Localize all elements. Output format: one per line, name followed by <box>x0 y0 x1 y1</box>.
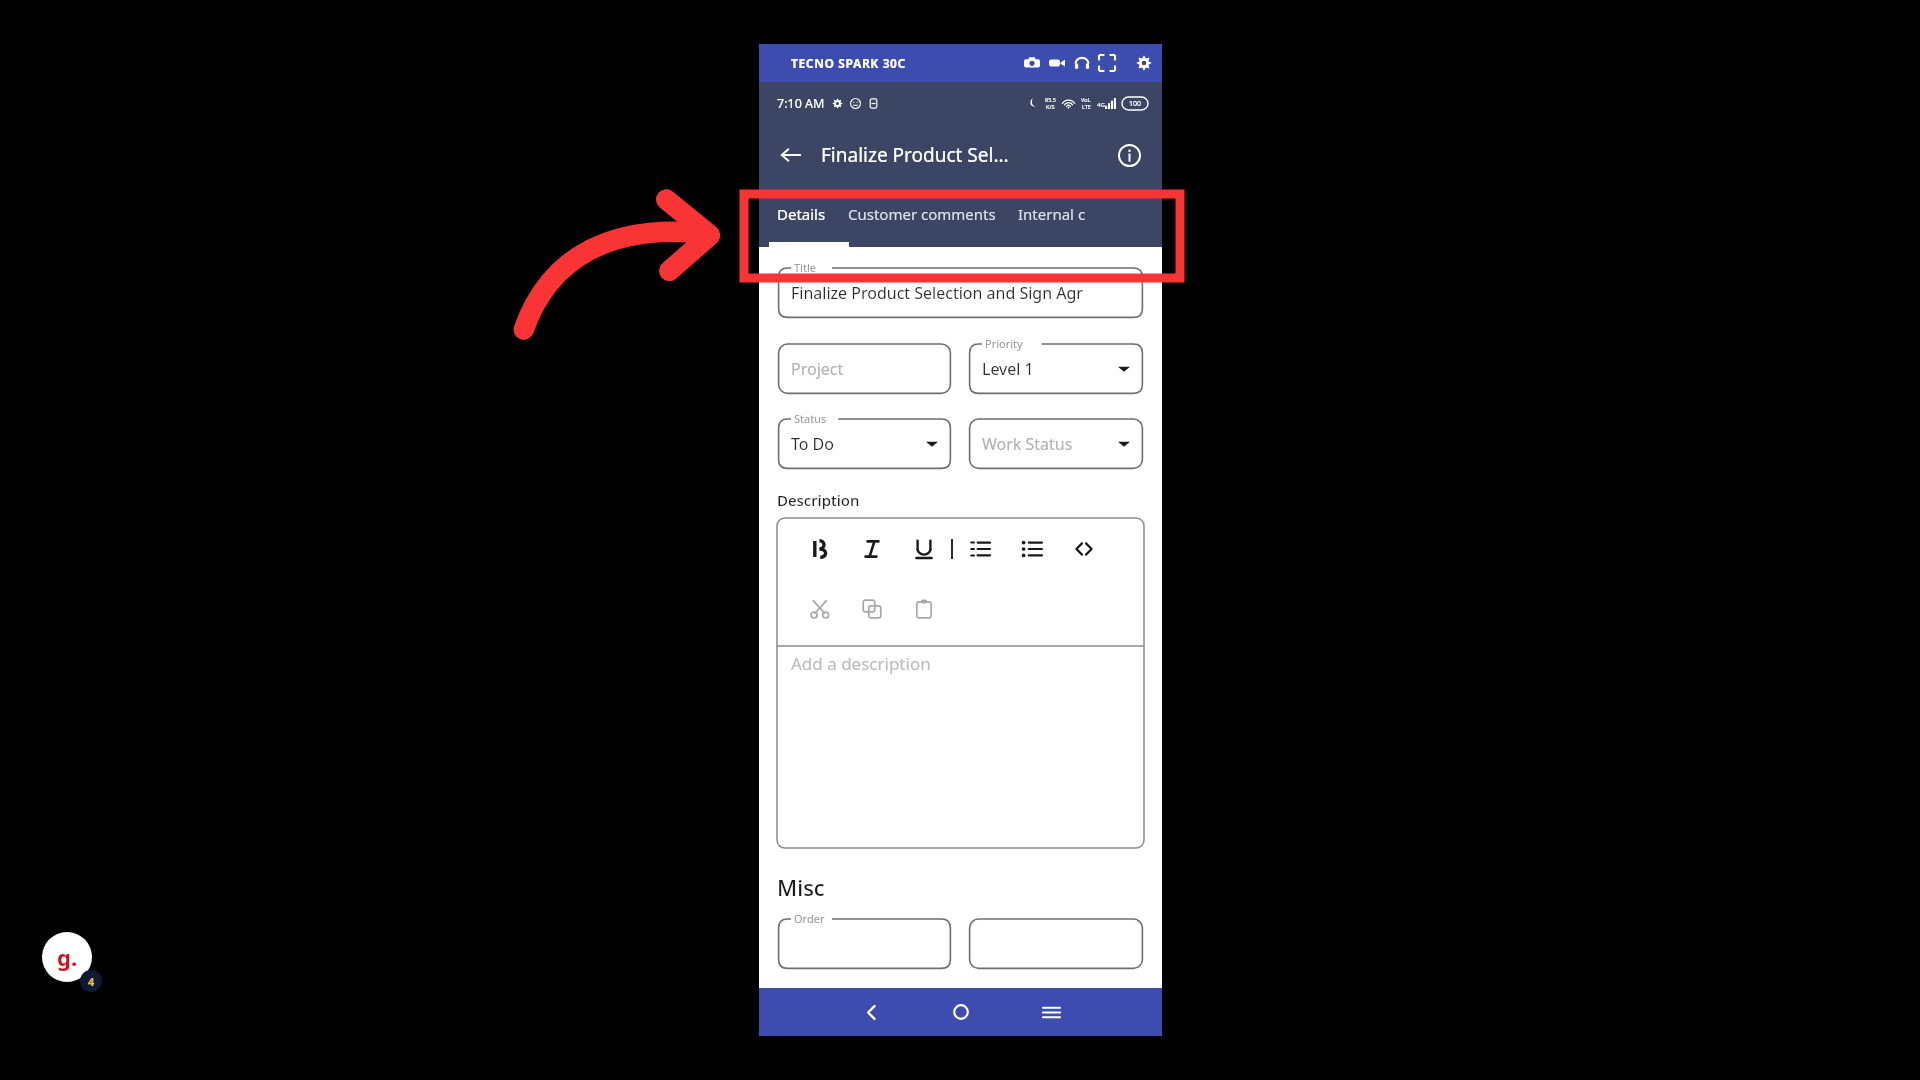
staticText: Order <box>794 911 825 926</box>
button[interactable]: Back <box>844 988 898 1036</box>
staticText: To Do <box>791 433 834 455</box>
button[interactable]: Copy <box>859 596 885 622</box>
button[interactable]: Internal c <box>1018 186 1086 242</box>
staticText: K/S <box>1046 103 1055 110</box>
button[interactable]: Fullscreen <box>1099 55 1115 71</box>
staticText: 100 <box>1129 99 1142 109</box>
button[interactable]: Recent apps <box>1024 988 1078 1036</box>
staticText: 7:10 AM <box>777 95 825 112</box>
button[interactable]: Title <box>777 261 1144 319</box>
button[interactable]: Bulleted list <box>1019 536 1045 562</box>
button[interactable]: Settings <box>1136 55 1152 71</box>
button[interactable]: Bold <box>807 536 833 562</box>
button[interactable] <box>968 912 1144 970</box>
button[interactable]: Order <box>777 912 952 970</box>
button[interactable]: g. <box>42 932 92 982</box>
staticText: Customer comments <box>848 204 996 224</box>
button[interactable]: Work Status <box>968 412 1144 470</box>
staticText: Misc <box>777 872 825 902</box>
staticText: 85.5 <box>1045 96 1056 103</box>
button[interactable]: Record video <box>1049 55 1065 71</box>
button[interactable]: Paste <box>911 596 937 622</box>
staticText: Level 1 <box>982 358 1034 380</box>
button[interactable]: Italic <box>859 536 885 562</box>
button[interactable]: Code <box>1071 536 1097 562</box>
staticText: Add a description <box>791 652 931 675</box>
staticText: Finalize Product Selection and Sign Agr <box>791 282 1083 304</box>
staticText: Finalize Product Sel... <box>821 142 1108 168</box>
button[interactable]: Info <box>1108 134 1150 176</box>
staticText: 4G <box>1097 101 1105 109</box>
staticText: Status <box>794 411 827 426</box>
button[interactable]: Project <box>777 337 952 395</box>
staticText: VoL <box>1081 96 1091 103</box>
button[interactable]: Cut <box>807 596 833 622</box>
button[interactable]: Priority <box>968 337 1144 395</box>
button[interactable]: Customer comments <box>848 186 996 242</box>
button[interactable]: Audio <box>1074 55 1090 71</box>
button[interactable]: Screenshot <box>1024 55 1040 71</box>
staticText: LTE <box>1082 103 1091 110</box>
staticText: Priority <box>985 336 1023 351</box>
staticText: 4 <box>88 974 95 989</box>
staticText: TECNO SPARK 30C <box>791 55 906 71</box>
button[interactable]: Numbered list <box>967 536 993 562</box>
staticText: Work Status <box>982 433 1073 455</box>
staticText: Details <box>777 204 826 224</box>
button[interactable]: Home <box>934 988 988 1036</box>
button[interactable]: Underline <box>911 536 937 562</box>
staticText: Project <box>791 358 844 380</box>
staticText: Title <box>794 260 816 275</box>
staticText: Description <box>777 490 860 510</box>
button[interactable]: Status <box>777 412 952 470</box>
button[interactable]: Back <box>769 133 813 177</box>
staticText: Internal c <box>1018 204 1086 224</box>
button[interactable]: Details <box>777 186 826 242</box>
staticText: g. <box>57 942 78 972</box>
